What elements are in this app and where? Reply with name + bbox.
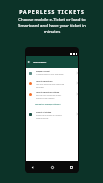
staticText: Use your favourite itso smartcard unlock… [36,83,65,89]
staticText: Load to smartcard [36,80,53,82]
button[interactable]: Mobile e-Ticket [28,70,79,79]
button[interactable]: Load to smartcard [28,80,79,91]
staticText: Load to smartcard station [36,91,60,93]
staticText: A digital ticket in your app wallet [36,73,64,75]
staticText: Pick up your smartcard at any station in… [36,94,62,100]
button[interactable]: Back [27,60,31,64]
button[interactable]: Back [31,166,34,169]
staticText: Mobile e-Ticket [36,70,50,72]
button[interactable]: Find out all available stations > [35,103,62,105]
staticText: Choose mobile e-Ticket or load to Smartc… [18,16,86,34]
staticText: Collect your tickets at a station ticket… [36,114,62,120]
staticText: Ticket Delivery [33,61,47,64]
button[interactable]: Collect at station [28,111,79,122]
button[interactable]: Home [51,166,54,169]
staticText: PAPERLESS TICKETS [19,9,85,16]
staticText: Collect at station [36,111,52,113]
button[interactable]: Recents [70,166,73,169]
button[interactable]: Load to smartcard station [28,91,79,102]
